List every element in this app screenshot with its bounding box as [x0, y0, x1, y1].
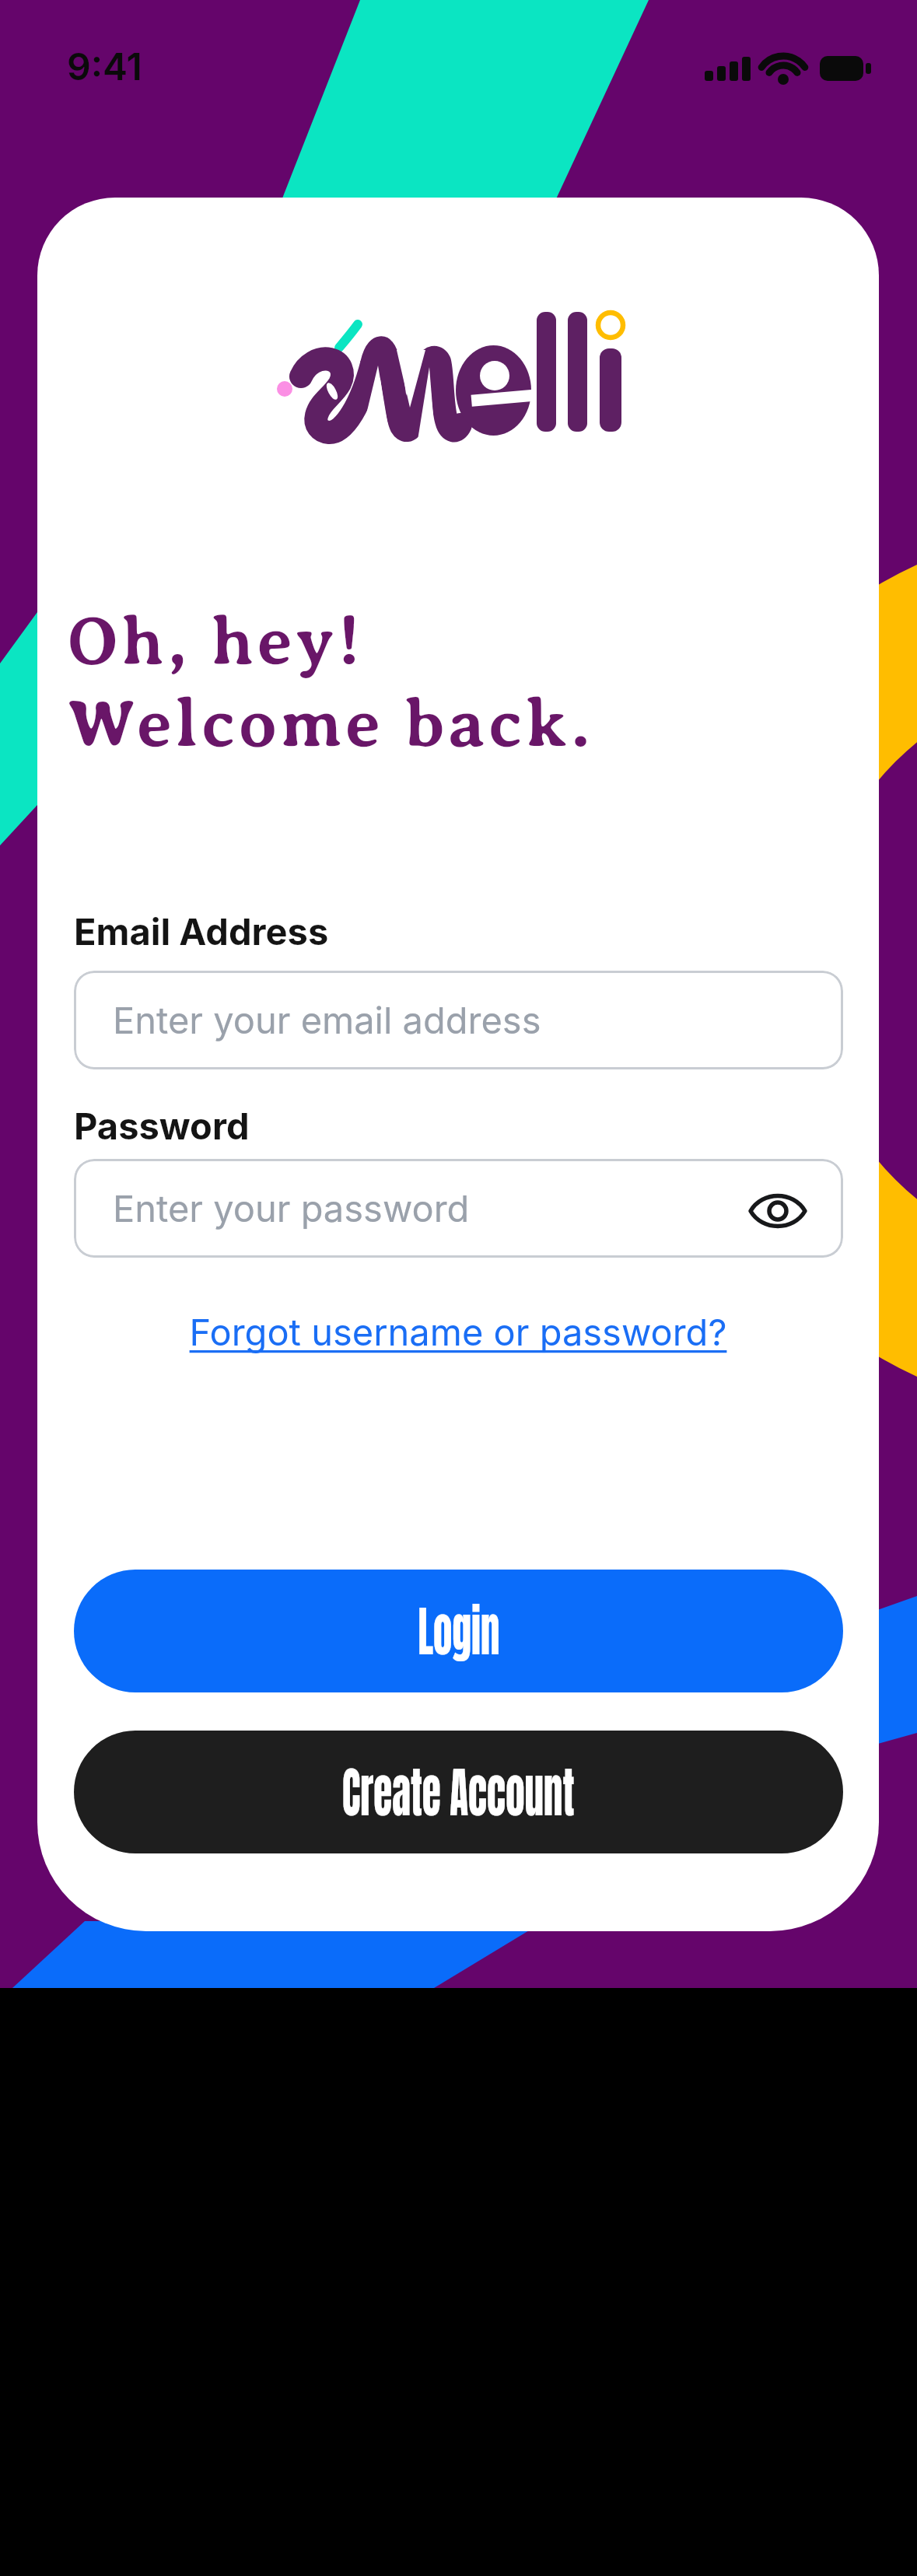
button[interactable]: Enter your email address: [74, 971, 843, 1069]
staticText: Login: [418, 1591, 500, 1672]
staticText: Email Address: [74, 909, 329, 954]
staticText: Create Account: [342, 1752, 575, 1833]
staticText: Oh, hey! Welcome back.: [67, 602, 594, 761]
staticText: Enter your email address: [113, 998, 541, 1042]
button[interactable]: Login: [74, 1570, 843, 1692]
staticText: Password: [74, 1104, 250, 1148]
button[interactable]: Enter your password: [74, 1159, 843, 1258]
staticText: Enter your password: [113, 1186, 470, 1230]
staticText: 9:41: [67, 44, 142, 89]
button[interactable]: Create Account: [74, 1731, 843, 1853]
button[interactable]: Forgot username or password?: [37, 1310, 879, 1354]
